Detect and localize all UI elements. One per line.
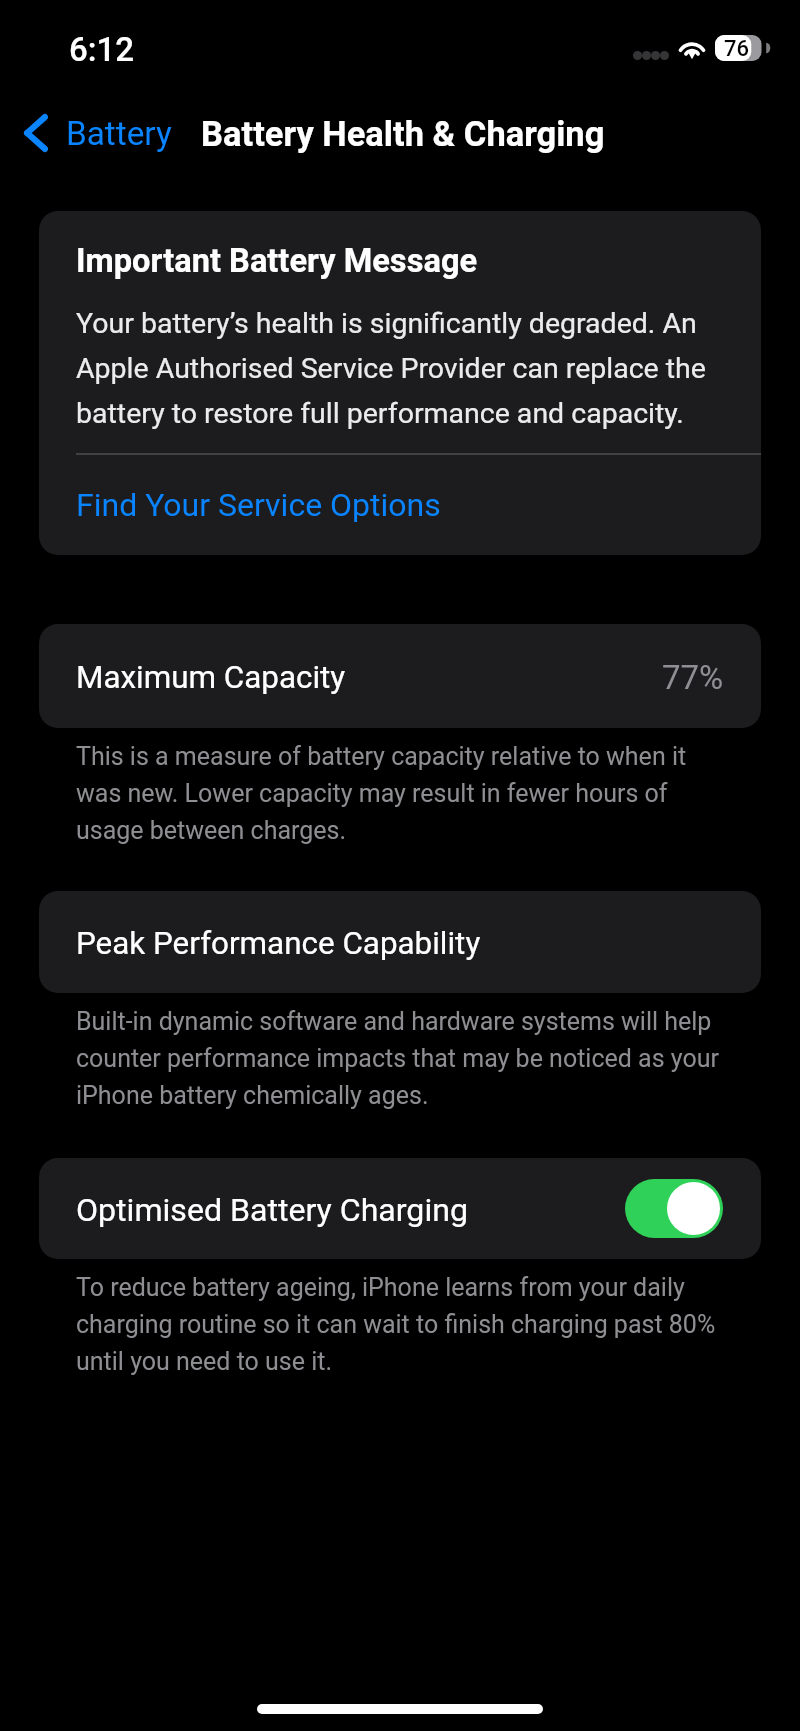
staticText: Maximum Capacity bbox=[76, 657, 346, 696]
staticText: Important Battery Message bbox=[76, 240, 478, 280]
button[interactable]: Peak Performance Capability bbox=[39, 891, 761, 993]
staticText: Battery bbox=[66, 112, 172, 154]
button[interactable]: Back to Battery bbox=[0, 104, 182, 162]
staticText: Your battery’s health is significantly d… bbox=[76, 298, 724, 433]
button[interactable]: Optimised Battery Charging toggle bbox=[625, 1179, 723, 1238]
staticText: Peak Performance Capability bbox=[76, 923, 481, 962]
staticText: Battery Health & Charging bbox=[201, 112, 605, 155]
staticText: 6:12 bbox=[69, 28, 135, 69]
staticText: Find Your Service Options bbox=[76, 486, 441, 524]
staticText: 77% bbox=[662, 656, 724, 697]
button[interactable]: Maximum Capacity bbox=[39, 624, 761, 728]
staticText: To reduce battery ageing, iPhone learns … bbox=[76, 1267, 727, 1378]
staticText: This is a measure of battery capacity re… bbox=[76, 736, 727, 847]
button[interactable]: Find Your Service Options bbox=[39, 455, 761, 555]
staticText: 76 bbox=[724, 34, 750, 60]
staticText: Optimised Battery Charging bbox=[76, 1189, 468, 1229]
staticText: Built-in dynamic software and hardware s… bbox=[76, 1001, 727, 1112]
